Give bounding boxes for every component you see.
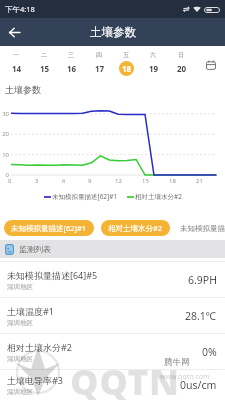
staticText: 三 xyxy=(68,51,74,59)
staticText: 六 xyxy=(150,51,156,59)
staticText: QQTN xyxy=(70,357,180,400)
staticText: 四 xyxy=(96,51,102,59)
staticText: 0 xyxy=(8,177,12,185)
staticText: 土壤参数 xyxy=(5,84,41,95)
staticText: 下午4:18 xyxy=(5,4,35,14)
staticText: 0% xyxy=(202,345,217,359)
staticText: www.qqtn.com xyxy=(160,372,210,382)
button[interactable]: 相对土壤水分#2 xyxy=(0,334,225,369)
button[interactable]: 一 xyxy=(5,46,27,76)
staticText: 30 xyxy=(0,110,9,118)
staticText: 未知模拟量描述[63]#4 xyxy=(180,224,225,233)
staticText: 深圳地区 xyxy=(7,388,33,396)
staticText: 深圳地区 xyxy=(7,319,33,327)
staticText: 0us/cm xyxy=(180,378,217,392)
staticText: 0 xyxy=(0,171,9,179)
button[interactable]: 六 xyxy=(142,46,164,76)
button[interactable]: 五 xyxy=(115,46,137,76)
staticText: 未知模拟量描述[64]#5 xyxy=(7,269,98,281)
staticText: 3 xyxy=(35,177,39,185)
staticText: 深圳地区 xyxy=(7,355,33,363)
staticText: 未知模拟量描述[62]#1 xyxy=(52,192,118,201)
staticText: 土壤电导率#3 xyxy=(7,374,63,386)
staticText: 土壤参数 xyxy=(90,25,136,39)
staticText: 二 xyxy=(41,51,47,59)
staticText: 五 xyxy=(123,51,129,59)
button[interactable]: 二 xyxy=(33,46,55,76)
staticText: 17 xyxy=(95,63,105,74)
staticText: 相对土壤水分#2 xyxy=(7,341,72,353)
staticText: 28.1℃ xyxy=(185,309,217,323)
staticText: 相对土壤水分#2 xyxy=(135,192,182,201)
button[interactable]: 四 xyxy=(88,46,110,76)
staticText: 15 xyxy=(40,63,50,74)
staticText: 16 xyxy=(67,63,77,74)
staticText: 土壤温度#1 xyxy=(7,305,54,317)
staticText: 20 xyxy=(0,130,9,138)
button[interactable]: 土壤温度#1 xyxy=(0,298,225,333)
staticText: 未知模拟量描述[62]#1 xyxy=(11,223,87,233)
staticText: 一 xyxy=(13,51,19,59)
staticText: 9 xyxy=(88,177,92,185)
button[interactable]: 相对土壤水分#2 xyxy=(101,220,170,236)
staticText: 腾牛网 xyxy=(164,357,190,368)
staticText: 14 xyxy=(12,63,22,74)
staticText: 10 xyxy=(0,151,9,159)
staticText: 18 xyxy=(122,63,132,74)
staticText: 相对土壤水分#2 xyxy=(108,223,163,233)
staticText: 监测列表 xyxy=(19,244,51,254)
staticText: 深圳地区 xyxy=(7,283,33,291)
staticText: 6.9PH xyxy=(188,273,217,287)
staticText: 15 xyxy=(142,177,149,185)
staticText: 日 xyxy=(178,51,184,59)
staticText: 21 xyxy=(196,177,203,185)
button[interactable]: 土壤电导率#3 xyxy=(0,370,225,400)
button[interactable]: 日 xyxy=(170,46,192,76)
staticText: 18 xyxy=(169,177,176,185)
staticText: 6 xyxy=(62,177,66,185)
button[interactable]: Back xyxy=(0,18,28,46)
staticText: 12 xyxy=(115,177,122,185)
button[interactable]: 未知模拟量描述[64]#5 xyxy=(0,262,225,297)
staticText: 20 xyxy=(177,63,187,74)
button[interactable]: 未知模拟量描述[62]#1 xyxy=(4,220,94,236)
staticText: 19 xyxy=(149,63,159,74)
button[interactable]: Calendar xyxy=(202,56,220,74)
button[interactable]: 三 xyxy=(60,46,82,76)
